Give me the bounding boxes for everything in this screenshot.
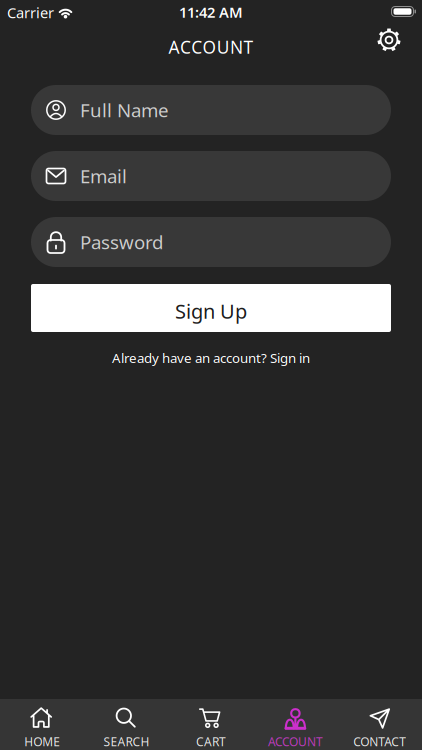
button[interactable]: Already have an account? Sign in xyxy=(112,349,310,367)
staticText: Already have an account? Sign in xyxy=(112,349,310,367)
button[interactable]: Password xyxy=(31,217,391,267)
staticText: CART xyxy=(196,733,226,749)
staticText: Password xyxy=(80,230,163,254)
button[interactable]: Settings xyxy=(374,32,404,62)
staticText: Carrier xyxy=(7,3,54,22)
staticText: ACCOUNT xyxy=(268,733,323,749)
button[interactable]: Email xyxy=(31,151,391,201)
staticText: 11:42 AM xyxy=(179,2,243,22)
button[interactable]: CART xyxy=(169,699,253,749)
button[interactable]: CONTACT xyxy=(338,699,422,749)
staticText: SEARCH xyxy=(104,733,150,749)
staticText: ACCOUNT xyxy=(169,35,253,58)
button[interactable]: Full Name xyxy=(31,85,391,135)
staticText: Full Name xyxy=(80,98,169,122)
button[interactable]: Sign Up xyxy=(31,284,391,332)
staticText: Sign Up xyxy=(175,298,247,324)
staticText: HOME xyxy=(24,733,60,749)
staticText: CONTACT xyxy=(353,733,406,749)
button[interactable]: HOME xyxy=(0,699,84,749)
button[interactable]: ACCOUNT xyxy=(253,699,338,749)
staticText: Email xyxy=(80,164,127,188)
button[interactable]: SEARCH xyxy=(84,699,169,749)
